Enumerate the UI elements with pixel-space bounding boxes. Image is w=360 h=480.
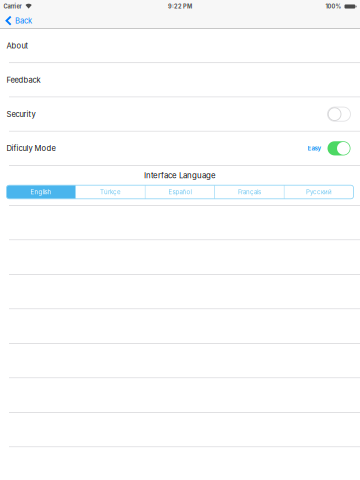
staticText: Español — [168, 188, 191, 196]
button[interactable]: Dificuly Mode — [0, 132, 360, 166]
button[interactable]: Security — [0, 97, 360, 132]
button[interactable]: English — [7, 185, 75, 199]
staticText: Türkçe — [100, 188, 121, 196]
button[interactable]: Español — [146, 185, 214, 199]
button[interactable]: Français — [215, 185, 284, 199]
staticText: Easy — [307, 145, 321, 152]
staticText: 9:22 PM — [168, 3, 192, 10]
staticText: English — [30, 188, 51, 196]
staticText: 100% — [325, 3, 341, 10]
staticText: Security — [6, 110, 35, 119]
staticText: Français — [238, 188, 261, 196]
button[interactable]: Feedback — [0, 63, 360, 97]
staticText: Feedback — [6, 75, 40, 85]
button[interactable]: Back — [0, 13, 40, 28]
staticText: Interface Language — [144, 171, 216, 180]
staticText: Carrier — [3, 3, 21, 10]
button[interactable]: Türkçe — [76, 185, 145, 199]
staticText: About — [6, 41, 27, 50]
button[interactable]: Русский — [285, 185, 353, 199]
button[interactable]: About — [0, 29, 360, 63]
staticText: Русский — [306, 188, 332, 196]
staticText: Dificuly Mode — [6, 144, 55, 153]
staticText: Back — [15, 16, 32, 25]
